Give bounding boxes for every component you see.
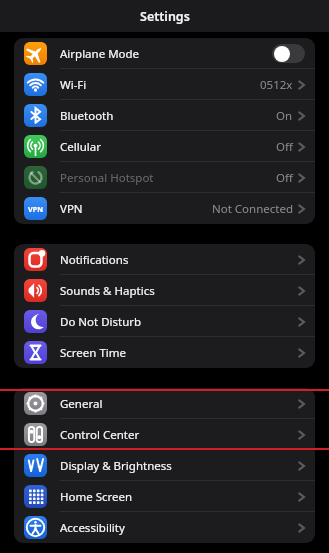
staticText: VPN	[28, 204, 43, 214]
staticText: Sounds & Haptics	[60, 283, 155, 299]
staticText: 0512x	[260, 77, 293, 93]
button[interactable]: VPN	[14, 193, 315, 224]
button[interactable]: Do Not Disturb	[14, 306, 315, 337]
button[interactable]: Airplane Mode toggle	[272, 44, 305, 63]
button[interactable]: Accessibility	[14, 512, 315, 543]
staticText: Do Not Disturb	[60, 314, 142, 330]
staticText: Airplane Mode	[60, 46, 140, 62]
staticText: Off	[276, 170, 293, 186]
button[interactable]: Bluetooth	[14, 100, 315, 131]
staticText: Screen Time	[60, 345, 127, 361]
staticText: Display & Brightness	[60, 458, 172, 474]
staticText: Not Connected	[212, 201, 293, 217]
staticText: Control Center	[60, 427, 140, 443]
staticText: Wi-Fi	[60, 77, 87, 93]
staticText: Settings	[140, 8, 190, 25]
button[interactable]: Wi-Fi	[14, 69, 315, 100]
staticText: Notifications	[60, 252, 129, 268]
button[interactable]: General	[14, 388, 315, 419]
button[interactable]: Cellular	[14, 131, 315, 162]
button[interactable]: Personal Hotspot	[14, 162, 315, 193]
staticText: Bluetooth	[60, 108, 114, 124]
button[interactable]: Display & Brightness	[14, 450, 315, 481]
staticText: On	[276, 108, 293, 124]
staticText: Accessibility	[60, 520, 125, 536]
staticText: Off	[276, 139, 293, 155]
button[interactable]: Notifications	[14, 244, 315, 275]
staticText: Personal Hotspot	[60, 170, 154, 186]
button[interactable]: Screen Time	[14, 337, 315, 368]
button[interactable]: Sounds & Haptics	[14, 275, 315, 306]
staticText: VPN	[60, 201, 83, 217]
button[interactable]: Airplane Mode	[14, 38, 315, 69]
staticText: General	[60, 396, 103, 412]
button[interactable]: Control Center	[14, 419, 315, 450]
staticText: Home Screen	[60, 489, 133, 505]
staticText: Cellular	[60, 139, 101, 155]
button[interactable]: Home Screen	[14, 481, 315, 512]
